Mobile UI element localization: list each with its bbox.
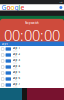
staticText: e bbox=[21, 3, 25, 12]
staticText: o bbox=[11, 3, 15, 12]
staticText: l bbox=[19, 3, 21, 12]
button[interactable]: Lap 7 bbox=[0, 82, 64, 88]
staticText: 01:13.8 bbox=[13, 80, 18, 82]
staticText: 01:26.0 bbox=[13, 86, 18, 88]
button[interactable]: Lap 2 bbox=[0, 52, 64, 58]
staticText: ▴ ▾ ▮ bbox=[59, 1, 62, 3]
staticText: 01:01.2 bbox=[13, 74, 18, 76]
staticText: 00:12.4 bbox=[13, 50, 18, 52]
staticText: Lap 3 bbox=[13, 58, 21, 62]
staticText: 00:00:00 bbox=[4, 26, 60, 45]
button[interactable]: Lap 4 bbox=[0, 64, 64, 70]
staticText: G bbox=[2, 3, 7, 12]
button[interactable]: Account bbox=[59, 6, 62, 9]
staticText: Lap 6 bbox=[13, 76, 21, 80]
staticText: Stopwatch bbox=[25, 21, 39, 25]
button[interactable]: Lap 5 bbox=[0, 70, 64, 76]
staticText: Lap 5 bbox=[13, 70, 21, 74]
staticText: Lap 7 bbox=[13, 82, 21, 86]
button[interactable]: Lap 3 bbox=[0, 58, 64, 64]
button[interactable]: Lap 6 bbox=[0, 76, 64, 82]
staticText: g bbox=[15, 3, 19, 12]
staticText: 00:48.7 bbox=[13, 68, 18, 70]
button[interactable]: Lap 1 bbox=[0, 46, 64, 52]
staticText: Lap 4 bbox=[13, 64, 21, 68]
staticText: 00:24.9 bbox=[13, 56, 18, 58]
staticText: Laps bbox=[2, 42, 8, 45]
staticText: Lap 1 bbox=[13, 46, 21, 50]
staticText: o bbox=[7, 3, 11, 12]
staticText: 00:36.1 bbox=[13, 62, 18, 64]
staticText: Lap 2 bbox=[13, 52, 21, 56]
